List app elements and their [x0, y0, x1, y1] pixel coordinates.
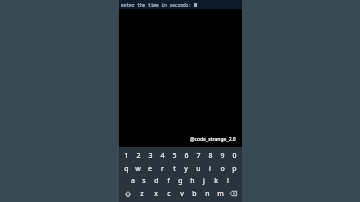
staticText: 7	[196, 151, 201, 161]
staticText: x	[154, 189, 158, 199]
staticText: @code_strange_2.0	[190, 136, 236, 143]
staticText: i	[209, 164, 211, 174]
button[interactable]: n	[201, 188, 214, 199]
button[interactable]: 0	[228, 150, 240, 161]
staticText: u	[196, 164, 201, 174]
button[interactable]: e	[144, 163, 156, 174]
button[interactable]: k	[210, 175, 222, 186]
staticText: 4	[160, 151, 165, 161]
button[interactable]: r	[156, 163, 168, 174]
staticText: 5	[172, 151, 177, 161]
staticText: 8	[208, 151, 213, 161]
button[interactable]: a	[127, 175, 138, 186]
staticText: b	[192, 189, 197, 199]
button[interactable]: 5	[168, 150, 180, 161]
button[interactable]: l	[222, 175, 234, 186]
button[interactable]: h	[186, 175, 198, 186]
staticText: 6	[184, 151, 189, 161]
staticText: 0	[232, 151, 237, 161]
button[interactable]: 6	[180, 150, 192, 161]
staticText: 2	[136, 151, 141, 161]
staticText: q	[124, 164, 129, 174]
button[interactable]: i	[204, 163, 216, 174]
staticText: a	[131, 176, 135, 186]
button[interactable]: 7	[192, 150, 204, 161]
button[interactable]: 1	[121, 150, 132, 161]
button[interactable]: t	[168, 163, 180, 174]
button[interactable]: Shift	[121, 188, 135, 199]
staticText: enter the time in seconds:	[121, 2, 192, 8]
button[interactable]: j	[198, 175, 210, 186]
staticText: 1	[124, 151, 129, 161]
button[interactable]: c	[162, 188, 175, 199]
staticText: w	[135, 164, 141, 174]
staticText: z	[140, 189, 144, 199]
staticText: h	[190, 176, 195, 186]
button[interactable]: b	[188, 188, 201, 199]
staticText: y	[184, 164, 188, 174]
staticText: l	[227, 176, 229, 186]
button[interactable]: x	[149, 188, 162, 199]
staticText: d	[154, 176, 159, 186]
staticText: p	[232, 164, 237, 174]
staticText: o	[220, 164, 225, 174]
staticText: j	[203, 176, 205, 186]
staticText: n	[205, 189, 210, 199]
staticText: v	[180, 189, 184, 199]
button[interactable]: m	[214, 188, 227, 199]
button[interactable]: g	[174, 175, 186, 186]
button[interactable]: u	[192, 163, 204, 174]
button[interactable]: p	[228, 163, 240, 174]
staticText: k	[214, 176, 218, 186]
staticText: s	[142, 176, 146, 186]
button[interactable]: s	[138, 175, 150, 186]
button[interactable]: f	[162, 175, 174, 186]
button[interactable]: q	[121, 163, 132, 174]
button[interactable]: 9	[216, 150, 228, 161]
button[interactable]: 4	[156, 150, 168, 161]
button[interactable]: enter the time in seconds:	[119, 0, 242, 9]
staticText: c	[167, 189, 171, 199]
staticText: 9	[220, 151, 225, 161]
button[interactable]: d	[150, 175, 162, 186]
button[interactable]: 8	[204, 150, 216, 161]
staticText: f	[167, 176, 170, 186]
button[interactable]: o	[216, 163, 228, 174]
button[interactable]: 2	[132, 150, 144, 161]
staticText: m	[217, 189, 224, 199]
button[interactable]: w	[132, 163, 144, 174]
staticText: g	[178, 176, 183, 186]
button[interactable]: Backspace	[227, 188, 240, 199]
button[interactable]: z	[135, 188, 149, 199]
button[interactable]: v	[175, 188, 188, 199]
staticText: 3	[148, 151, 153, 161]
staticText: t	[173, 164, 176, 174]
button[interactable]: y	[180, 163, 192, 174]
staticText: e	[148, 164, 152, 174]
button[interactable]: 3	[144, 150, 156, 161]
staticText: r	[161, 164, 164, 174]
